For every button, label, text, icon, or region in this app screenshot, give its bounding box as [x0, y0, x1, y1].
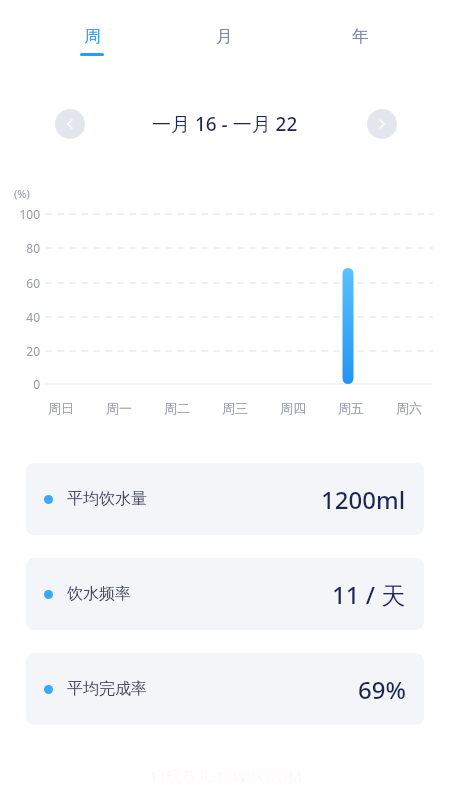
- button[interactable]: Previous week: [55, 109, 85, 139]
- staticText: 周四: [280, 400, 306, 416]
- staticText: 周三: [222, 400, 248, 416]
- button[interactable]: 平均饮水量: [26, 463, 424, 535]
- staticText: 月: [216, 26, 233, 47]
- staticText: 11 / 天: [332, 578, 406, 611]
- staticText: 80: [26, 240, 40, 256]
- staticText: 平均完成率: [67, 679, 147, 699]
- staticText: 0: [33, 376, 40, 392]
- staticText: 周六: [396, 400, 422, 416]
- staticText: 69%: [358, 673, 406, 706]
- button[interactable]: Next week: [367, 109, 397, 139]
- button[interactable]: 周: [62, 26, 122, 68]
- button[interactable]: 月: [194, 26, 254, 56]
- staticText: 周一: [106, 400, 132, 416]
- staticText: 平均饮水量: [67, 489, 147, 509]
- staticText: 饮水频率: [67, 584, 131, 604]
- staticText: 年: [352, 26, 369, 47]
- staticText: 周五: [338, 400, 364, 416]
- staticText: 40: [26, 309, 40, 325]
- button[interactable]: 年: [330, 26, 390, 56]
- staticText: 1200ml: [321, 483, 406, 516]
- staticText: (%): [14, 186, 30, 201]
- staticText: 一月 16 - 一月 22: [152, 111, 298, 137]
- staticText: 20: [26, 343, 40, 359]
- staticText: 周日: [48, 400, 74, 416]
- button[interactable]: 饮水频率: [26, 558, 424, 630]
- staticText: 周二: [164, 400, 190, 416]
- staticText: 100: [19, 206, 40, 222]
- staticText: 周: [84, 26, 101, 47]
- button[interactable]: 平均完成率: [26, 653, 424, 725]
- staticText: 60: [26, 275, 40, 291]
